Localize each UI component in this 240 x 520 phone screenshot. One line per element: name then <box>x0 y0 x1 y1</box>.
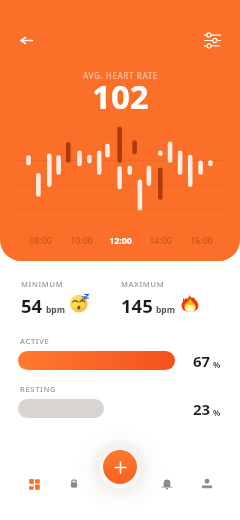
staticText: ACTIVE <box>20 336 50 346</box>
button[interactable]: Profile <box>190 467 224 501</box>
staticText: 08:00 <box>29 235 52 247</box>
staticText: 10:00 <box>70 235 93 247</box>
button[interactable]: Add <box>103 450 137 484</box>
staticText: % <box>213 407 221 418</box>
button[interactable]: Filter settings <box>197 23 231 57</box>
staticText: 16:00 <box>190 235 213 247</box>
staticText: AVG. HEART RATE <box>83 70 158 81</box>
button[interactable] <box>18 399 104 418</box>
staticText: MAXIMUM <box>121 279 165 289</box>
staticText: MINIMUM <box>21 279 64 289</box>
staticText: 12:00 <box>109 235 132 247</box>
staticText: 67 <box>193 351 211 371</box>
staticText: bpm <box>46 304 66 316</box>
button[interactable]: Dashboard <box>17 467 51 501</box>
staticText: 102 <box>92 74 149 119</box>
staticText: 14:00 <box>149 235 172 247</box>
button[interactable] <box>18 351 175 370</box>
button[interactable]: Back <box>9 23 43 57</box>
staticText: 54 <box>21 293 43 318</box>
button[interactable]: Notifications <box>150 467 184 501</box>
button[interactable]: Workouts <box>57 467 91 501</box>
staticText: 145 <box>121 293 153 318</box>
staticText: 23 <box>193 399 211 419</box>
staticText: RESTING <box>20 384 57 394</box>
staticText: bpm <box>156 304 176 316</box>
staticText: % <box>213 359 221 370</box>
